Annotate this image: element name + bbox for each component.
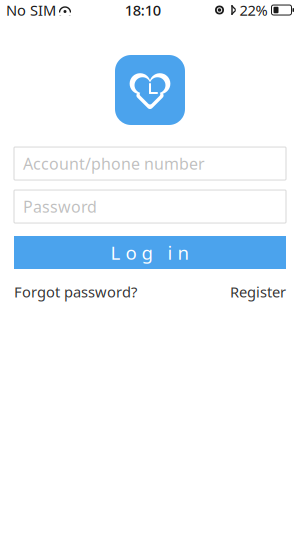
- button[interactable]: Account/phone number: [14, 147, 286, 180]
- button[interactable]: L o g i n: [14, 236, 286, 269]
- staticText: Password: [23, 196, 97, 217]
- staticText: Account/phone number: [23, 153, 205, 174]
- staticText: 22%: [239, 0, 267, 20]
- button[interactable]: Password: [14, 190, 286, 223]
- button[interactable]: Register: [230, 278, 286, 305]
- button[interactable]: Forgot password?: [14, 278, 137, 305]
- staticText: Register: [230, 282, 286, 301]
- staticText: L o g i n: [110, 240, 189, 265]
- staticText: 18:10: [125, 0, 161, 20]
- staticText: Forgot password?: [14, 282, 137, 301]
- staticText: No SIM: [6, 0, 56, 20]
